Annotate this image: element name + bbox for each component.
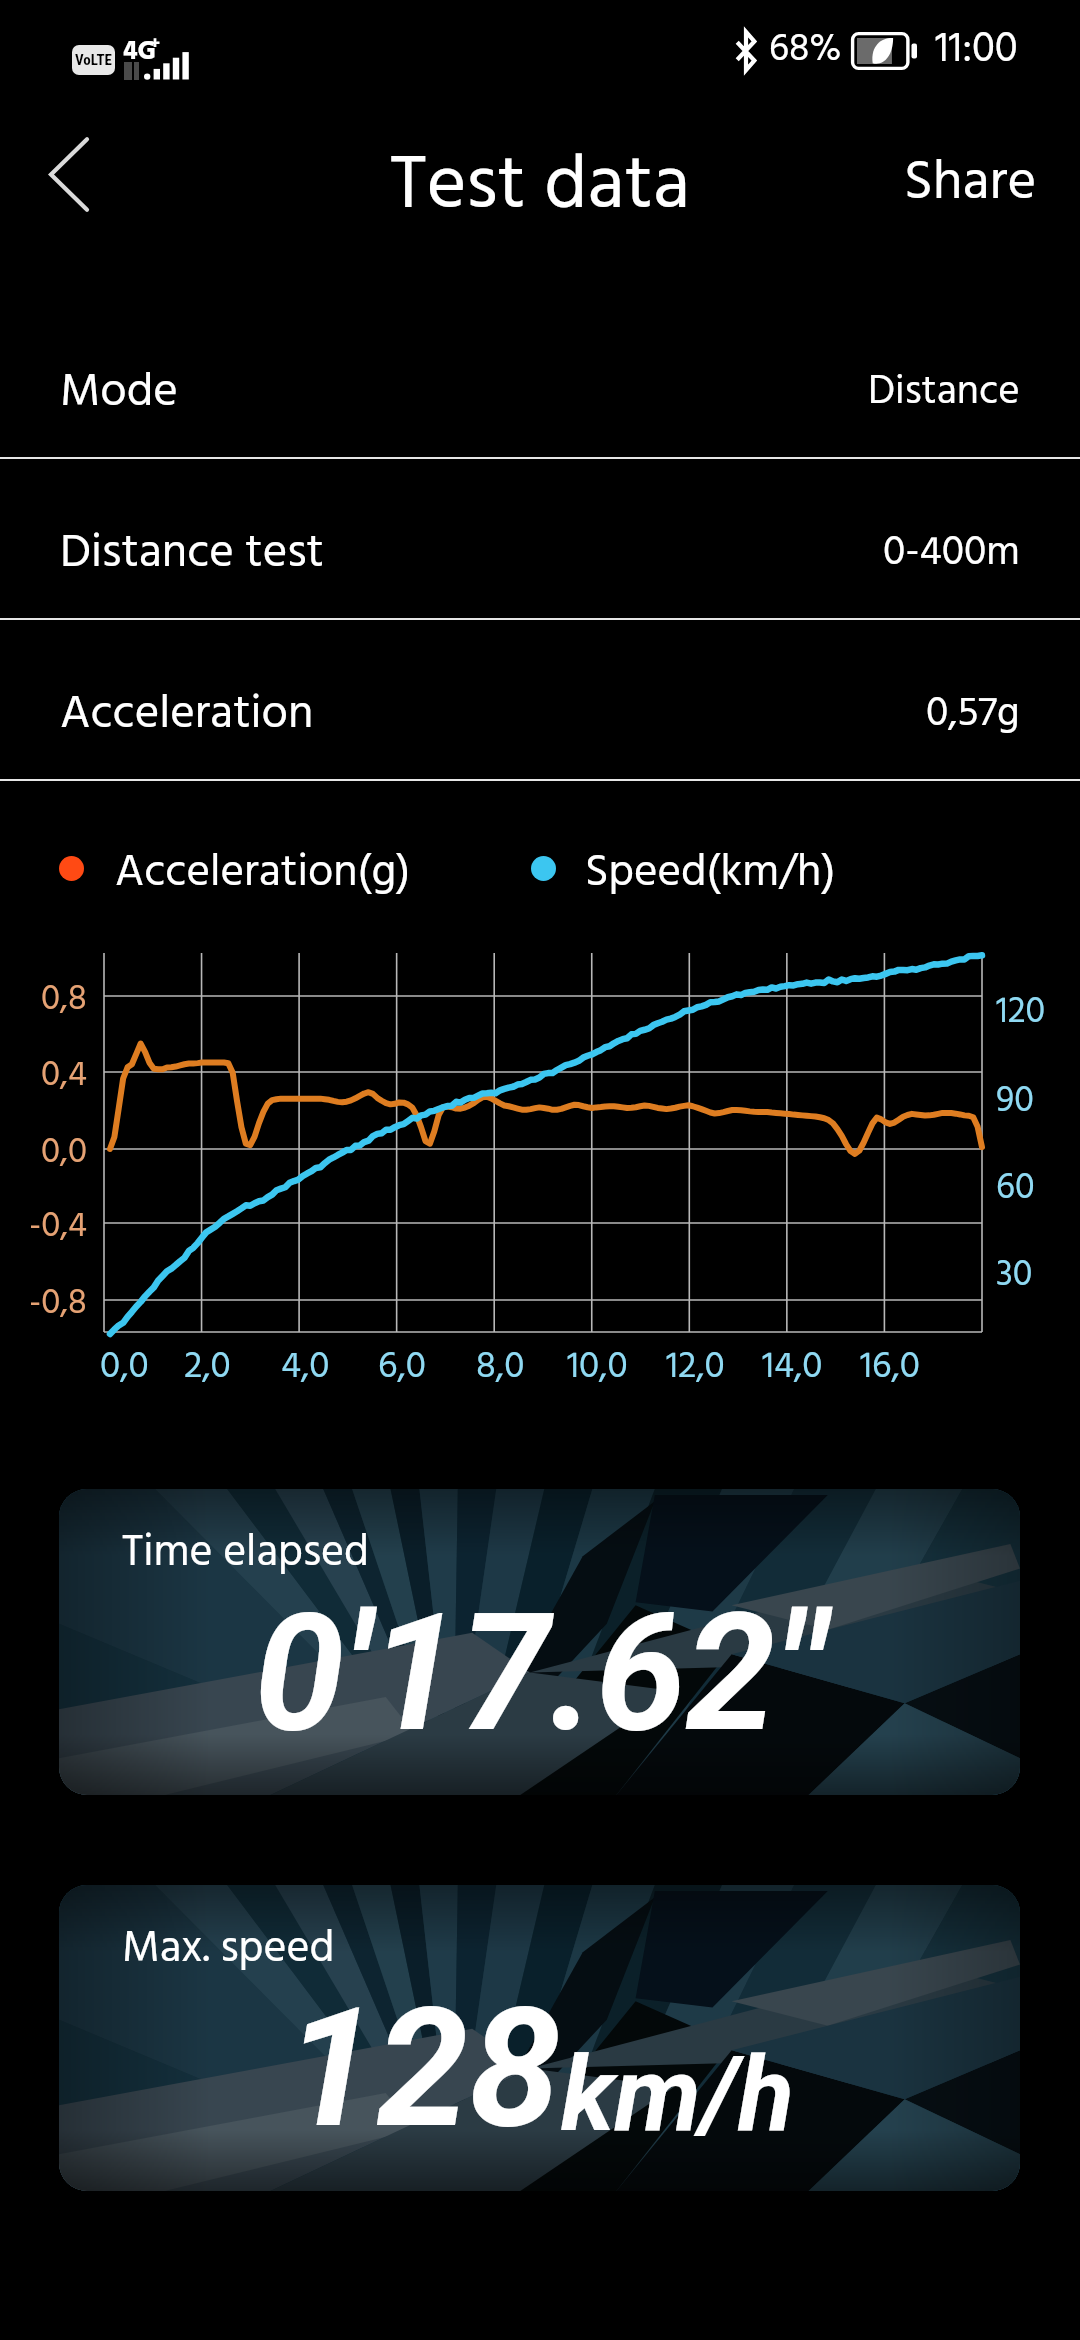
staticText: Mode bbox=[60, 355, 178, 430]
staticText: 0,57g bbox=[926, 682, 1020, 748]
staticText: 0,8 bbox=[41, 972, 87, 1028]
staticText: 4G bbox=[123, 32, 156, 74]
staticText: 0,0 bbox=[100, 1338, 149, 1397]
staticText: 16,0 bbox=[860, 1338, 920, 1397]
staticText: Max. speed bbox=[122, 1915, 335, 1985]
staticText: 12,0 bbox=[666, 1338, 725, 1397]
staticText: 0'17.62" bbox=[254, 1579, 826, 1769]
staticText: Speed(km/h) bbox=[585, 838, 836, 898]
staticText: 8,0 bbox=[476, 1338, 525, 1397]
staticText: 120 bbox=[996, 984, 1045, 1042]
staticText: -0,4 bbox=[29, 1199, 87, 1255]
staticText: 6,0 bbox=[378, 1338, 426, 1397]
button[interactable]: Distance test bbox=[0, 459, 1080, 618]
staticText: 14,0 bbox=[762, 1338, 823, 1397]
staticText: Distance bbox=[868, 360, 1020, 426]
staticText: Time elapsed bbox=[122, 1519, 370, 1589]
staticText: 30 bbox=[996, 1247, 1033, 1305]
staticText: Acceleration(g) bbox=[115, 838, 411, 898]
staticText: Distance test bbox=[60, 516, 324, 591]
button[interactable]: Time elapsed bbox=[59, 1489, 1020, 1795]
staticText: + bbox=[150, 31, 161, 58]
staticText: 60 bbox=[996, 1160, 1035, 1218]
staticText: 10,0 bbox=[567, 1338, 628, 1397]
staticText: 128 bbox=[285, 1972, 561, 2165]
staticText: Acceleration bbox=[60, 677, 314, 752]
button[interactable]: Back bbox=[15, 120, 123, 228]
staticText: 0,0 bbox=[41, 1125, 87, 1181]
staticText: 0-400m bbox=[883, 521, 1020, 587]
button[interactable]: Acceleration bbox=[0, 620, 1080, 779]
staticText: Test data bbox=[390, 127, 691, 249]
staticText: 90 bbox=[996, 1073, 1034, 1131]
staticText: 68% bbox=[769, 20, 842, 81]
staticText: -0,8 bbox=[29, 1276, 87, 1332]
staticText: 11:00 bbox=[935, 17, 1018, 84]
staticText: 0,4 bbox=[41, 1048, 87, 1104]
staticText: VoLTE bbox=[75, 51, 112, 69]
staticText: Share bbox=[904, 140, 1037, 228]
button[interactable]: Mode bbox=[0, 298, 1080, 457]
staticText: km/h bbox=[561, 2034, 794, 2155]
button[interactable]: Max. speed bbox=[59, 1885, 1020, 2191]
button[interactable]: Share bbox=[874, 128, 1080, 240]
staticText: 4,0 bbox=[281, 1338, 330, 1397]
staticText: 2,0 bbox=[184, 1338, 231, 1397]
